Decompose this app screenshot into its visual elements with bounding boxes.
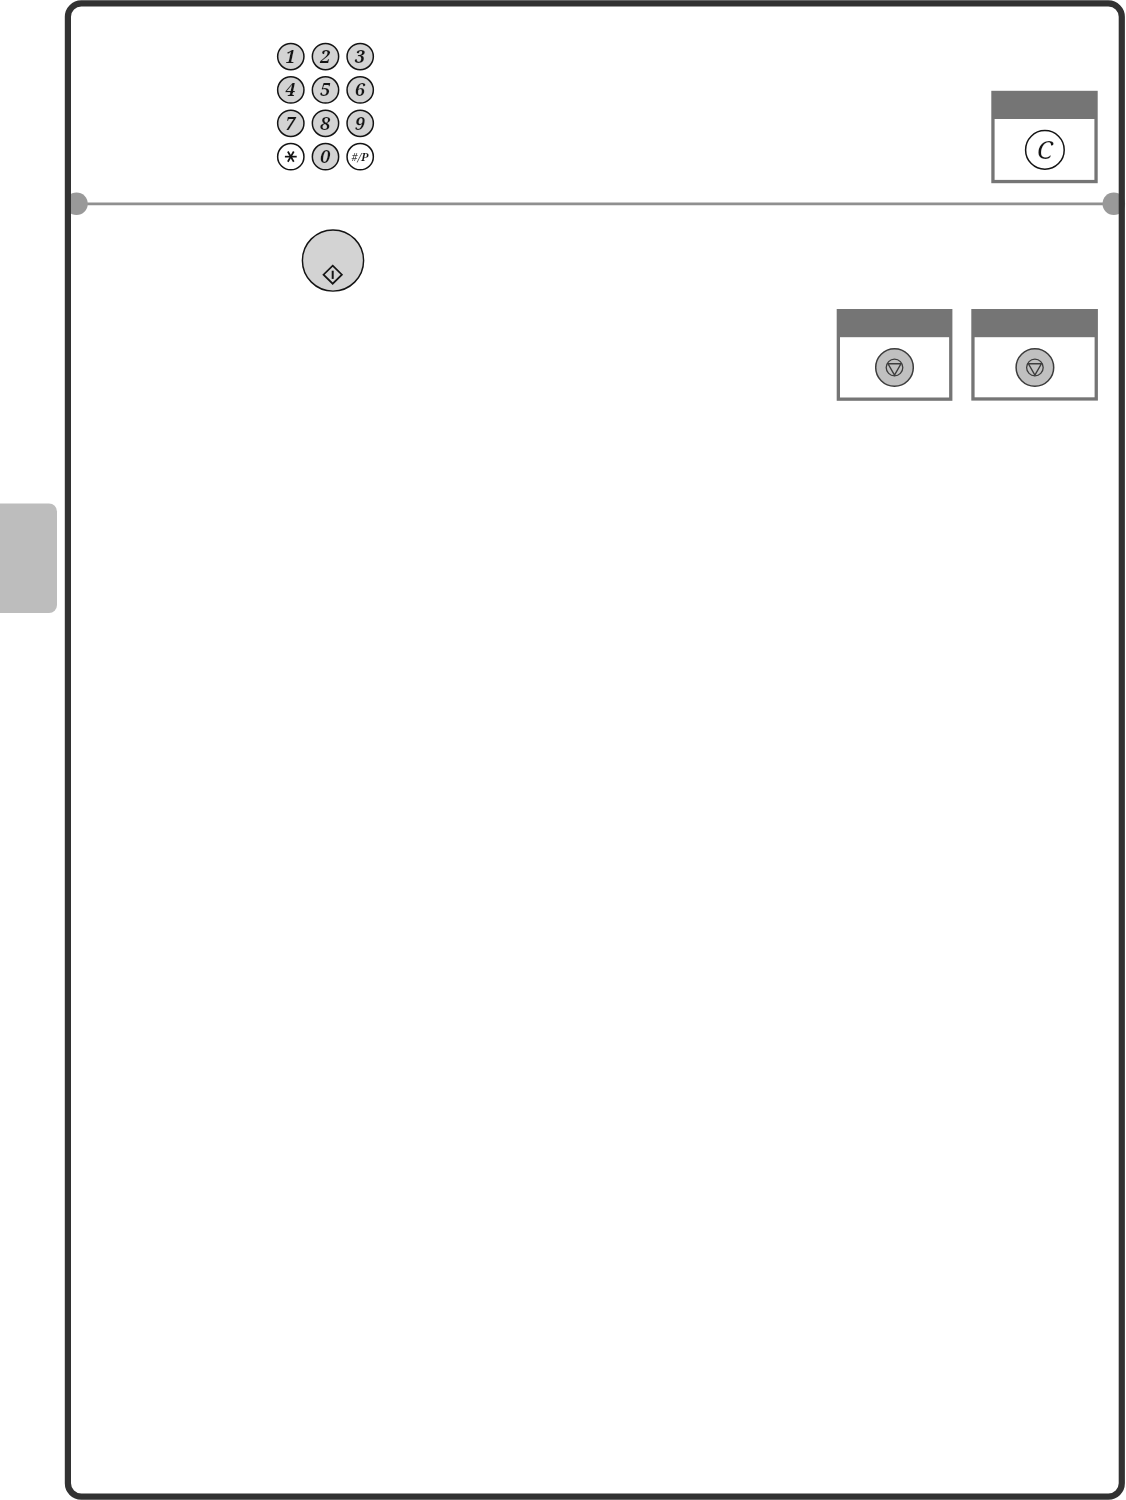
button[interactable]: 2 <box>312 43 338 69</box>
button[interactable]: Hash P <box>347 143 373 169</box>
button[interactable]: 9 <box>347 110 373 136</box>
button[interactable]: Star <box>278 143 304 169</box>
button[interactable]: 6 <box>347 77 373 103</box>
button[interactable]: Clear <box>991 91 1098 184</box>
button[interactable]: 8 <box>312 110 338 136</box>
button[interactable]: 0 <box>312 143 338 169</box>
button[interactable]: Stop <box>837 309 953 401</box>
button[interactable]: 3 <box>347 43 373 69</box>
button[interactable]: 5 <box>312 77 338 103</box>
button[interactable]: 1 <box>278 43 304 69</box>
button[interactable]: 7 <box>278 110 304 136</box>
button[interactable]: 4 <box>278 77 304 103</box>
button[interactable]: Start <box>302 230 363 291</box>
button[interactable]: Stop <box>971 309 1098 401</box>
